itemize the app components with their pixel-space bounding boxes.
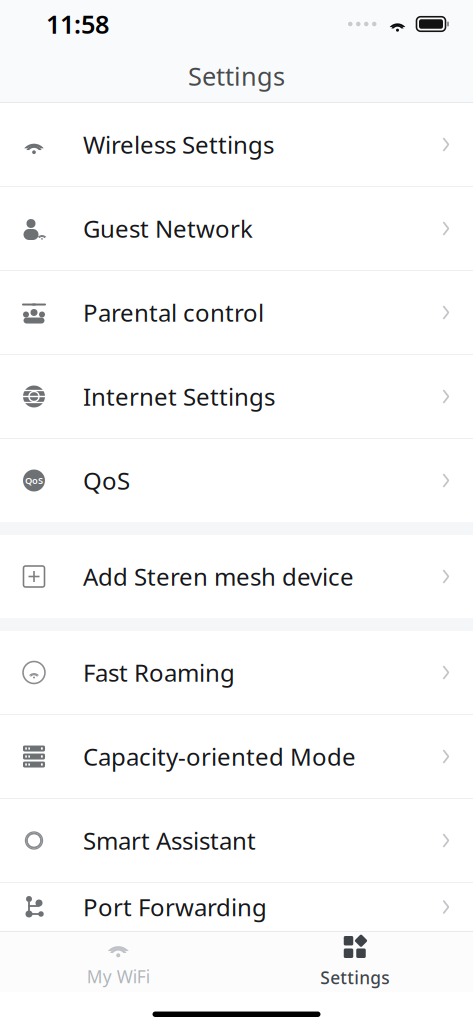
button[interactable]: Port Forwarding xyxy=(0,883,473,931)
staticText: Capacity-oriented Mode xyxy=(83,741,356,772)
staticText: Settings xyxy=(320,966,389,989)
staticText: 11:58 xyxy=(46,7,109,41)
button[interactable]: My WiFi xyxy=(0,932,236,992)
button[interactable]: Capacity-oriented Mode xyxy=(0,715,473,798)
staticText: Guest Network xyxy=(83,213,253,244)
button[interactable]: QoS xyxy=(0,439,473,522)
staticText: Port Forwarding xyxy=(83,891,267,923)
button[interactable]: Internet Settings xyxy=(0,355,473,438)
staticText: Parental control xyxy=(83,297,264,328)
button[interactable]: Smart Assistant xyxy=(0,799,473,882)
staticText: QoS xyxy=(25,474,43,487)
staticText: Smart Assistant xyxy=(83,825,256,856)
staticText: QoS xyxy=(83,465,130,496)
button[interactable]: Parental control xyxy=(0,271,473,354)
staticText: Wireless Settings xyxy=(83,129,274,160)
staticText: Fast Roaming xyxy=(83,657,235,688)
staticText: Settings xyxy=(188,59,285,93)
button[interactable]: Settings xyxy=(236,932,473,992)
button[interactable]: Guest Network xyxy=(0,187,473,270)
staticText: My WiFi xyxy=(87,965,150,988)
button[interactable]: Add Steren mesh device xyxy=(0,535,473,618)
button[interactable]: Wireless Settings xyxy=(0,103,473,186)
button[interactable]: Fast Roaming xyxy=(0,631,473,714)
staticText: Add Steren mesh device xyxy=(83,561,354,592)
staticText: Internet Settings xyxy=(83,381,275,412)
